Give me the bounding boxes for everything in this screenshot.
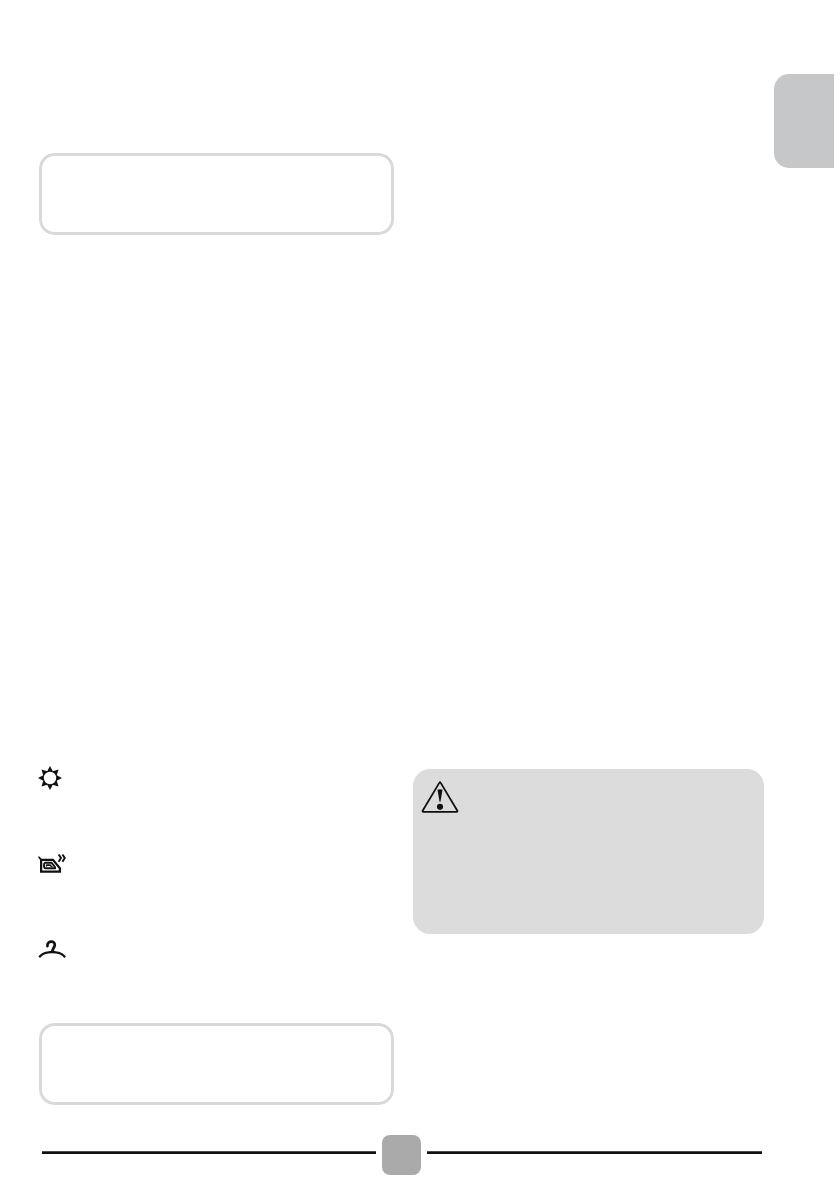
button[interactable]: Note [39, 1023, 394, 1105]
button[interactable]: Dry in sunlight [38, 766, 62, 790]
button[interactable]: Page number [382, 1135, 421, 1175]
button[interactable]: Chapter tab [774, 74, 834, 168]
button[interactable]: Hang to dry [37, 935, 69, 967]
button[interactable]: Iron with steam [37, 850, 70, 883]
button[interactable]: Note [39, 153, 394, 235]
button[interactable]: Warning [413, 769, 764, 934]
